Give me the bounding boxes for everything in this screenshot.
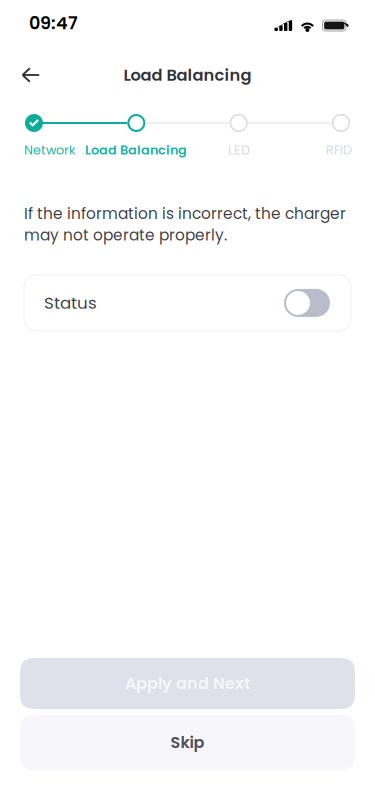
button[interactable]: Apply and Next xyxy=(20,658,355,709)
staticText: Status xyxy=(44,291,97,315)
button[interactable]: Status xyxy=(24,275,351,331)
staticText: 09:47 xyxy=(29,11,78,35)
button[interactable]: Back xyxy=(0,56,62,94)
staticText: RFID xyxy=(326,141,352,159)
staticText: If the information is incorrect, the cha… xyxy=(24,203,346,246)
button[interactable]: Skip xyxy=(20,715,355,770)
staticText: Network xyxy=(24,141,76,159)
staticText: Load Balancing xyxy=(123,64,251,86)
staticText: Skip xyxy=(170,731,204,754)
staticText: Apply and Next xyxy=(125,672,250,695)
staticText: Load Balancing xyxy=(85,141,187,159)
staticText: LED xyxy=(228,141,250,159)
